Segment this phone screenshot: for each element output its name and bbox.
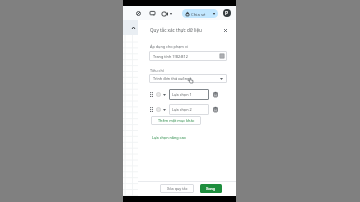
button[interactable]: Lựa chọn 2: [169, 104, 209, 115]
button[interactable]: Thêm một mục khác: [151, 116, 201, 125]
button[interactable]: Join a meeting: [162, 9, 175, 18]
staticText: Trình đơn thả xuống: [153, 76, 190, 81]
staticText: Xóa quy tắc: [167, 186, 188, 191]
staticText: Thêm một mục khác: [158, 118, 195, 123]
button[interactable]: Lựa chọn 1: [169, 89, 209, 100]
staticText: Xong: [206, 186, 216, 191]
staticText: Tiêu chí: [150, 68, 164, 73]
button[interactable]: Delete option: [212, 91, 218, 98]
button[interactable]: Google Account: [223, 9, 231, 17]
button[interactable]: Trang tính 1!B2:B12: [149, 51, 227, 61]
button[interactable]: Hide the menus: [129, 24, 137, 32]
button[interactable]: Xóa quy tắc: [160, 184, 194, 193]
staticText: Lựa chọn nâng cao: [152, 135, 186, 140]
button[interactable]: Comments: [148, 9, 157, 18]
button[interactable]: Choose colour: [156, 92, 161, 97]
staticText: Chia sẻ: [191, 11, 206, 17]
button[interactable]: Lựa chọn nâng cao: [150, 134, 188, 141]
button[interactable]: Choose colour: [156, 107, 161, 112]
staticText: P: [225, 10, 229, 17]
button[interactable]: Chia sẻ: [182, 9, 218, 18]
staticText: Áp dụng cho phạm vi: [150, 44, 188, 49]
button[interactable]: Quy tắc xác thực dữ liệu: [150, 27, 202, 33]
button[interactable]: Version history: [134, 9, 143, 18]
staticText: Lựa chọn 2: [172, 107, 192, 112]
staticText: Trang tính 1!B2:B12: [153, 54, 188, 59]
button[interactable]: Trình đơn thả xuống: [149, 74, 227, 83]
button[interactable]: Xong: [200, 184, 222, 193]
staticText: Lựa chọn 1: [172, 92, 192, 97]
button[interactable]: Delete option: [212, 106, 218, 113]
staticText: Quy tắc xác thực dữ liệu: [150, 27, 202, 33]
button[interactable]: Close: [221, 26, 230, 35]
